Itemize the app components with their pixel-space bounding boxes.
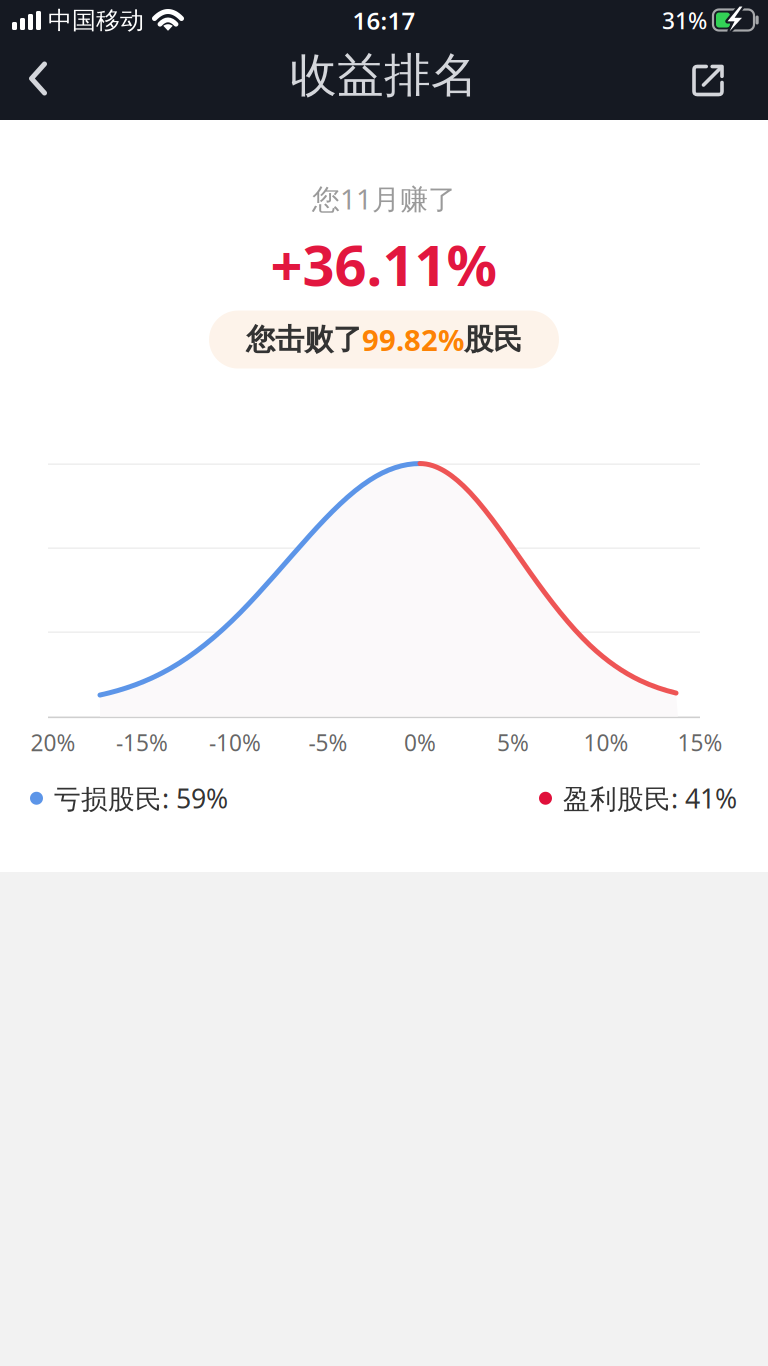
staticText: 亏损股民: 59% xyxy=(54,780,228,816)
staticText: 99.82% xyxy=(362,320,464,359)
staticText: 16:17 xyxy=(352,5,415,36)
staticText: -10% xyxy=(209,727,261,758)
staticText: 0% xyxy=(404,727,436,758)
staticText: 10% xyxy=(583,727,628,758)
staticText: 您击败了 xyxy=(246,321,362,357)
staticText: 15% xyxy=(677,727,722,758)
staticText: 收益排名 xyxy=(290,47,478,104)
staticText: -5% xyxy=(308,727,347,758)
staticText: +36.11% xyxy=(270,227,497,302)
staticText: 您11月赚了 xyxy=(312,180,456,217)
staticText: 股民 xyxy=(464,321,522,357)
staticText: 盈利股民: 41% xyxy=(563,780,737,816)
staticText: 20% xyxy=(30,727,75,758)
staticText: -15% xyxy=(116,727,168,758)
staticText: 31% xyxy=(662,5,707,35)
staticText: 5% xyxy=(497,727,529,758)
button[interactable]: Share xyxy=(680,50,736,110)
staticText: 中国移动 xyxy=(48,6,144,35)
button[interactable]: Back xyxy=(10,50,66,110)
